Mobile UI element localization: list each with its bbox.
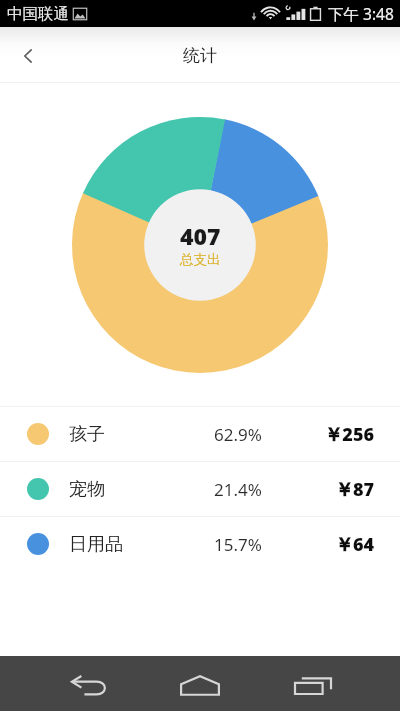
button[interactable]: 孩子 xyxy=(0,407,400,461)
staticText: 总支出 xyxy=(180,251,221,268)
staticText: 62.9% xyxy=(214,423,262,446)
staticText: ￥87 xyxy=(334,477,374,502)
button[interactable]: Home xyxy=(155,656,245,711)
staticText: 407 xyxy=(180,220,221,251)
button[interactable]: Back xyxy=(44,656,134,711)
button[interactable]: Back xyxy=(0,27,56,83)
staticText: 下午 3:48 xyxy=(328,3,394,24)
button[interactable]: 宠物 xyxy=(0,462,400,516)
button[interactable]: 日用品 xyxy=(0,517,400,571)
staticText: 宠物 xyxy=(69,478,105,501)
staticText: ￥256 xyxy=(324,422,374,447)
staticText: 中国联通 xyxy=(7,4,69,24)
staticText: 统计 xyxy=(183,45,217,66)
button[interactable]: Recent apps xyxy=(268,656,358,711)
staticText: 21.4% xyxy=(214,478,262,501)
staticText: ￥64 xyxy=(334,532,374,557)
staticText: 15.7% xyxy=(214,533,262,556)
staticText: 孩子 xyxy=(69,423,105,446)
staticText: 日用品 xyxy=(69,533,123,556)
